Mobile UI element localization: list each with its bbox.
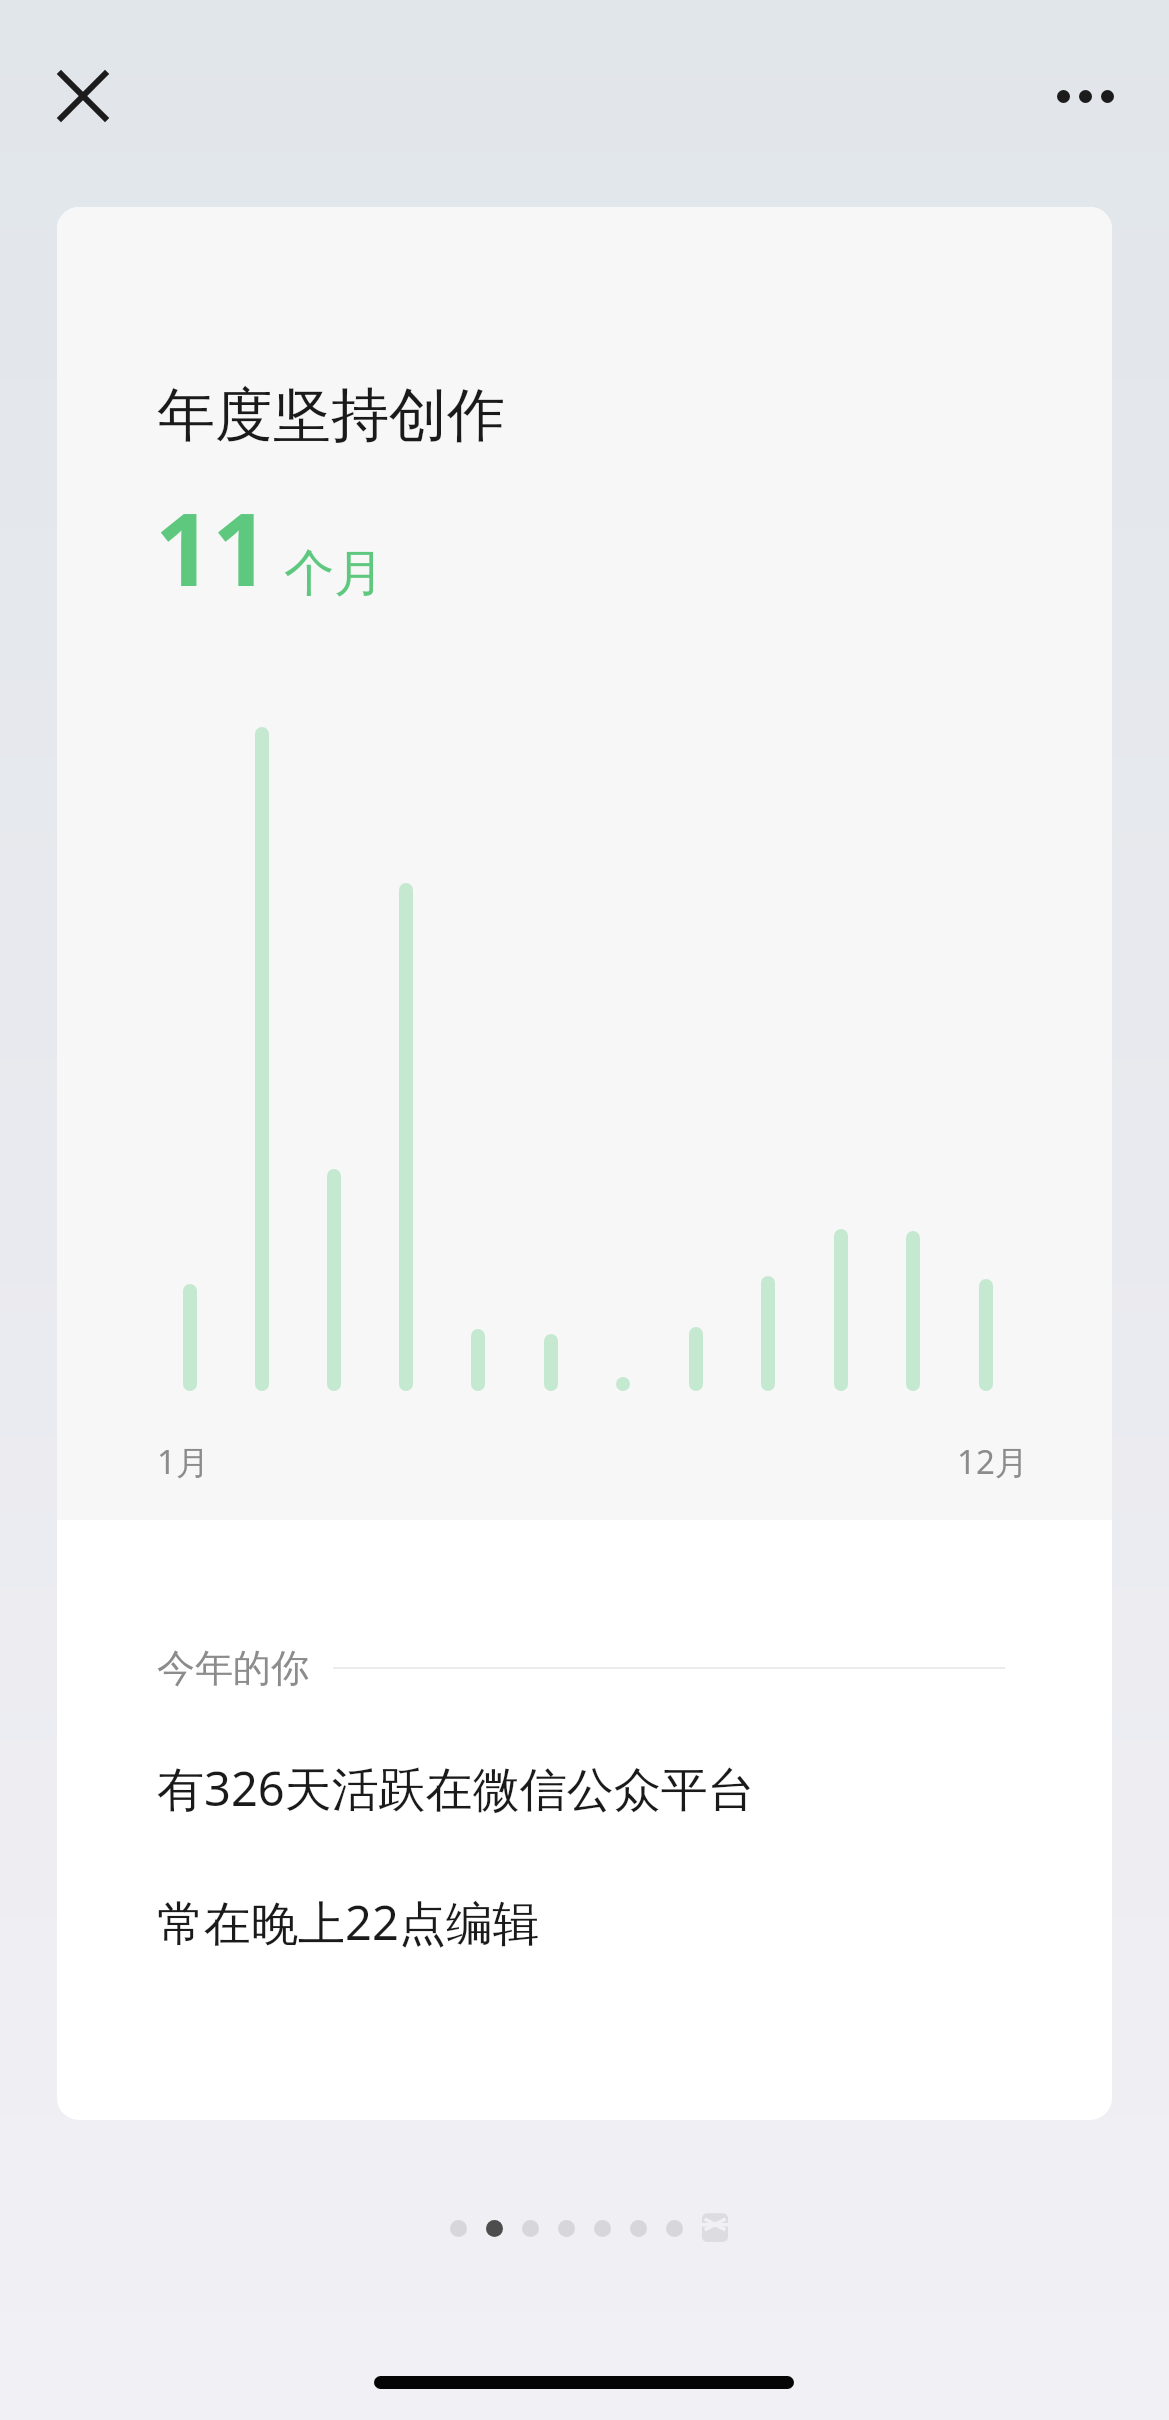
staticText: 有326天活跃在微信公众平台 [157, 1756, 755, 1820]
button[interactable]: Gift [702, 2210, 728, 2242]
staticText: 个月 [284, 542, 384, 605]
staticText: 常在晚上22点编辑 [157, 1890, 540, 1954]
button[interactable]: Page 4 [558, 2220, 575, 2237]
button[interactable]: Close [36, 49, 130, 143]
staticText: 1月 [157, 1439, 209, 1484]
staticText: 12月 [957, 1439, 1028, 1484]
button[interactable]: Page 5 [594, 2220, 611, 2237]
button[interactable]: Page 3 [522, 2220, 539, 2237]
button[interactable]: Page 7 [666, 2220, 683, 2237]
staticText: 今年的你 [157, 1644, 309, 1692]
staticText: 年度坚持创作 [157, 379, 505, 452]
button[interactable]: More options [1018, 49, 1152, 143]
staticText: 11 [155, 479, 270, 615]
button[interactable]: Page 2 [486, 2220, 503, 2237]
button[interactable]: 年度坚持创作 [57, 207, 1112, 2120]
button[interactable]: Page 1 [450, 2220, 467, 2237]
button[interactable]: Page 6 [630, 2220, 647, 2237]
